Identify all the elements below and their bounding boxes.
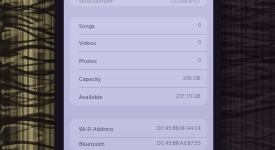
button[interactable]: Songs xyxy=(70,17,207,34)
staticText: Bluetooth xyxy=(79,140,105,147)
staticText: 0 xyxy=(198,22,201,29)
staticText: Photos xyxy=(79,57,97,64)
staticText: 0 xyxy=(198,57,201,64)
staticText: 237.15 GB xyxy=(176,93,201,100)
staticText: DC:45:B8:9F:A4:C4 xyxy=(157,125,201,132)
button[interactable]: Capacity xyxy=(70,69,207,87)
button[interactable]: Available xyxy=(70,87,207,105)
staticText: F2LX8K4PQ1 xyxy=(171,0,201,4)
staticText: Songs xyxy=(79,22,95,29)
staticText: Capacity xyxy=(79,75,101,82)
staticText: Serial Number xyxy=(79,0,113,4)
staticText: Videos xyxy=(79,39,97,46)
staticText: 256 GB xyxy=(183,75,201,82)
button[interactable]: Serial Number xyxy=(70,0,207,6)
button[interactable]: Wi-Fi Address xyxy=(70,119,207,137)
staticText: 0 xyxy=(198,39,201,46)
staticText: Available xyxy=(79,93,103,100)
button[interactable]: Videos xyxy=(70,34,207,51)
button[interactable]: Photos xyxy=(70,51,207,69)
staticText: Wi-Fi Address xyxy=(79,125,114,132)
staticText: DC:45:B8:A3:87:55 xyxy=(157,140,201,147)
button[interactable]: Bluetooth xyxy=(70,137,207,150)
